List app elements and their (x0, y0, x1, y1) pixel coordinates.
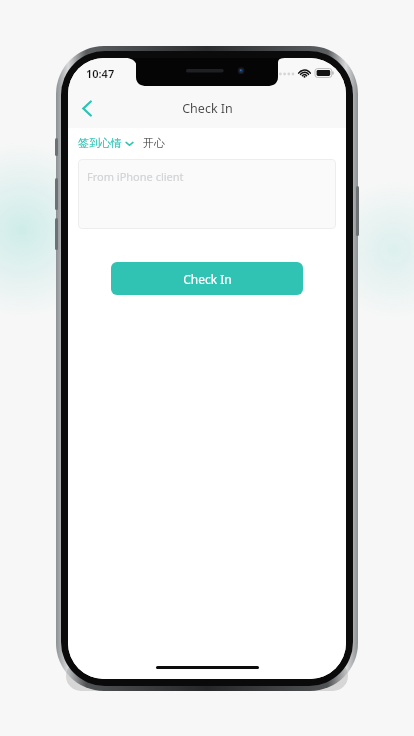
staticText: Check In (183, 271, 232, 287)
button[interactable]: Back (68, 89, 106, 127)
button[interactable]: From iPhone client (78, 159, 336, 229)
staticText: 10:47 (86, 66, 115, 81)
staticText: Check In (182, 100, 233, 117)
button[interactable]: Check In (111, 262, 303, 295)
staticText: 签到心情 (78, 136, 122, 150)
staticText: From iPhone client (87, 169, 184, 184)
button[interactable]: 签到心情 (78, 136, 165, 150)
staticText: 开心 (143, 136, 165, 150)
